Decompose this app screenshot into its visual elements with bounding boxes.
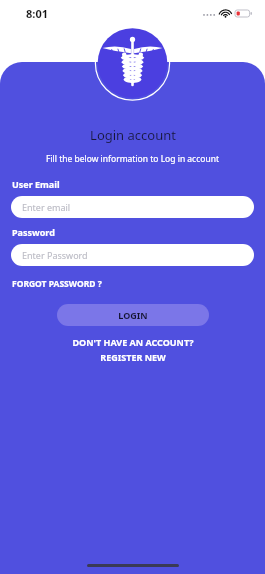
button[interactable]: Enter email	[11, 196, 254, 218]
staticText: Fill the below information to Log in acc…	[46, 153, 219, 165]
staticText: Password	[12, 226, 55, 238]
staticText: 8:01	[26, 6, 48, 21]
staticText: FORGOT PASSWORD ?	[12, 278, 102, 290]
button[interactable]: FORGOT PASSWORD ?	[0, 276, 265, 292]
staticText: LOGIN	[118, 309, 148, 321]
staticText: REGISTER NEW	[100, 351, 166, 363]
staticText: Login account	[90, 126, 176, 144]
staticText: User Email	[12, 178, 60, 190]
other: App logo	[95, 21, 170, 105]
button[interactable]: LOGIN	[57, 304, 209, 326]
staticText: DON'T HAVE AN ACCOUNT?	[72, 336, 194, 348]
button[interactable]: DON'T HAVE AN ACCOUNT?	[0, 335, 265, 364]
button[interactable]: Enter Password	[11, 244, 254, 266]
staticText: Enter Password	[22, 249, 88, 261]
staticText: Enter email	[22, 201, 71, 213]
